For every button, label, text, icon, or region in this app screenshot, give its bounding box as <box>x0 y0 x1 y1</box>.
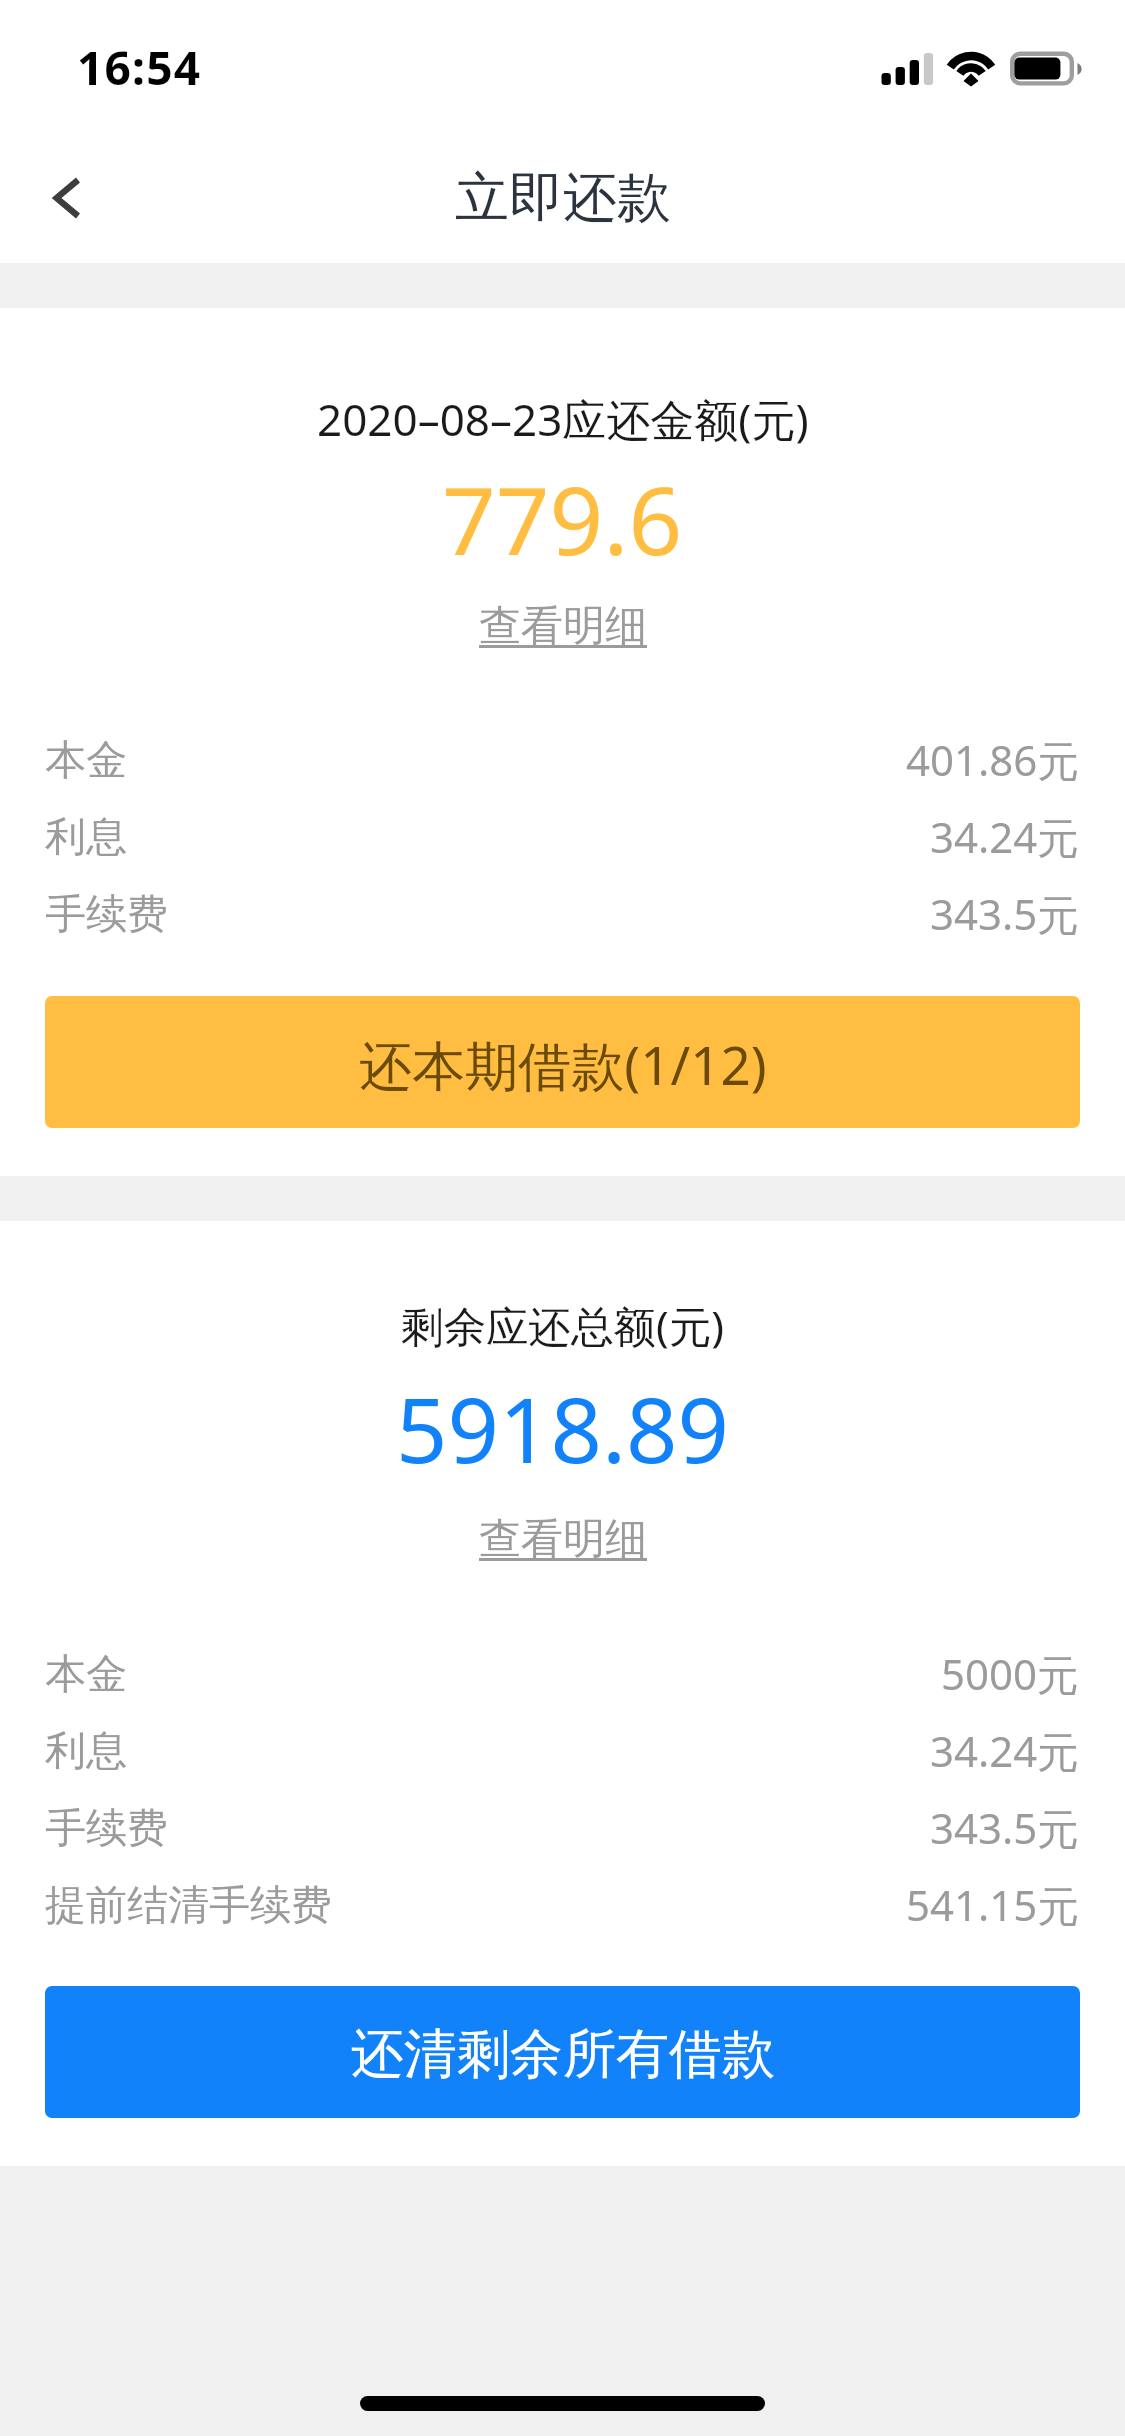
staticText: 利息 <box>45 812 127 864</box>
staticText: 343.5元 <box>930 1799 1080 1856</box>
button[interactable]: 提前结清手续费 <box>45 1880 1080 1937</box>
staticText: 提前结清手续费 <box>45 1880 332 1932</box>
button[interactable]: 查看明细 <box>479 1513 647 1566</box>
other: Signal, Wi-Fi and battery status <box>875 45 1090 95</box>
button[interactable]: 利息 <box>45 812 1080 869</box>
staticText: 2020–08–23应还金额(元) <box>317 389 809 449</box>
button[interactable]: Back <box>8 142 120 254</box>
staticText: 查看明细 <box>479 600 647 653</box>
button[interactable]: 还清剩余所有借款 <box>45 1986 1080 2118</box>
button[interactable]: 本金 <box>45 1649 1080 1706</box>
staticText: 401.86元 <box>906 731 1080 788</box>
staticText: 查看明细 <box>479 1513 647 1566</box>
staticText: 34.24元 <box>930 1722 1080 1779</box>
staticText: 5000元 <box>941 1645 1080 1702</box>
button[interactable]: 手续费 <box>45 889 1080 946</box>
staticText: 本金 <box>45 735 127 787</box>
button[interactable]: 查看明细 <box>479 600 647 653</box>
button[interactable]: 还本期借款(1/12) <box>45 996 1080 1128</box>
staticText: 343.5元 <box>930 885 1080 942</box>
staticText: 手续费 <box>45 889 168 941</box>
staticText: 779.6 <box>442 455 683 583</box>
staticText: 剩余应还总额(元) <box>401 1297 724 1355</box>
staticText: 5918.89 <box>396 1367 729 1490</box>
staticText: 手续费 <box>45 1803 168 1855</box>
staticText: 34.24元 <box>930 808 1080 865</box>
staticText: 16:54 <box>77 36 202 99</box>
button[interactable]: 本金 <box>45 735 1080 792</box>
staticText: 还本期借款(1/12) <box>359 1028 767 1100</box>
staticText: 还清剩余所有借款 <box>351 2021 775 2088</box>
staticText: 541.15元 <box>906 1876 1080 1933</box>
button[interactable]: 利息 <box>45 1726 1080 1783</box>
button[interactable]: 手续费 <box>45 1803 1080 1860</box>
staticText: 本金 <box>45 1649 127 1701</box>
staticText: 立即还款 <box>455 164 671 232</box>
staticText: 利息 <box>45 1726 127 1778</box>
